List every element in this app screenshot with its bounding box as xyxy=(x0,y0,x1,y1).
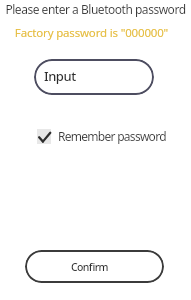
staticText: Remember password xyxy=(58,128,166,144)
button[interactable]: Remember password checkbox, checked xyxy=(37,128,166,144)
button[interactable]: Confirm xyxy=(25,250,164,283)
button[interactable]: Input xyxy=(34,59,154,95)
other: Remember password checkbox, checked xyxy=(37,129,51,144)
staticText: Factory password is "000000" xyxy=(0,25,187,41)
staticText: Please enter a Bluetooth password xyxy=(0,1,191,17)
staticText: Input xyxy=(44,67,76,85)
staticText: Confirm xyxy=(71,260,108,274)
